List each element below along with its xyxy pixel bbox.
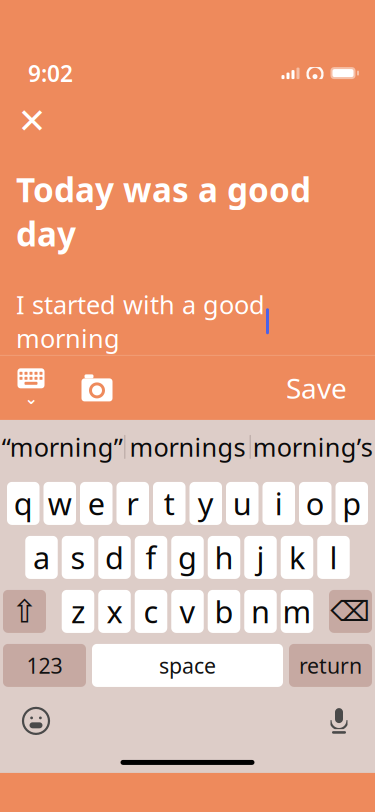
- button[interactable]: t: [153, 482, 185, 525]
- button[interactable]: Save: [278, 360, 355, 416]
- button[interactable]: space: [92, 644, 283, 687]
- staticText: h: [214, 537, 233, 578]
- staticText: m: [282, 591, 311, 632]
- staticText: p: [342, 483, 361, 524]
- button[interactable]: Add photo: [72, 360, 122, 416]
- staticText: 9:02: [28, 58, 73, 88]
- button[interactable]: r: [116, 482, 149, 525]
- staticText: r: [126, 483, 139, 524]
- staticText: d: [105, 537, 124, 578]
- staticText: k: [289, 537, 305, 578]
- staticText: ⌄: [24, 389, 37, 407]
- button[interactable]: z: [62, 590, 94, 633]
- staticText: n: [251, 591, 270, 632]
- button[interactable]: Hide keyboard: [6, 360, 56, 416]
- staticText: q: [14, 483, 33, 524]
- button[interactable]: Emoji: [12, 699, 60, 743]
- button[interactable]: y: [189, 482, 222, 525]
- staticText: I started with a good morning: [16, 288, 265, 355]
- button[interactable]: k: [281, 536, 313, 579]
- staticText: f: [145, 537, 156, 578]
- button[interactable]: b: [208, 590, 240, 633]
- staticText: ⌫: [330, 595, 370, 627]
- staticText: ✕: [17, 101, 46, 141]
- staticText: z: [71, 591, 85, 632]
- staticText: t: [164, 483, 175, 524]
- staticText: w: [48, 483, 72, 524]
- button[interactable]: d: [98, 536, 131, 579]
- staticText: e: [88, 483, 105, 524]
- button[interactable]: x: [98, 590, 131, 633]
- button[interactable]: u: [226, 482, 258, 525]
- staticText: 123: [26, 651, 62, 679]
- button[interactable]: morning’s: [251, 420, 375, 474]
- staticText: y: [198, 483, 214, 524]
- button[interactable]: h: [208, 536, 240, 579]
- staticText: g: [178, 537, 197, 578]
- button[interactable]: m: [281, 590, 313, 633]
- button[interactable]: s: [62, 536, 94, 579]
- staticText: u: [233, 483, 252, 524]
- staticText: l: [329, 537, 337, 578]
- button[interactable]: f: [135, 536, 167, 579]
- button[interactable]: Shift: [3, 590, 46, 633]
- button[interactable]: Close: [10, 99, 54, 143]
- button[interactable]: i: [262, 482, 295, 525]
- staticText: space: [159, 651, 216, 679]
- staticText: s: [70, 537, 85, 578]
- button[interactable]: q: [7, 482, 39, 525]
- button[interactable]: c: [135, 590, 167, 633]
- staticText: Save: [286, 369, 347, 406]
- button[interactable]: j: [244, 536, 277, 579]
- button[interactable]: g: [171, 536, 204, 579]
- button[interactable]: Delete: [329, 590, 372, 633]
- button[interactable]: a: [25, 536, 58, 579]
- button[interactable]: e: [80, 482, 112, 525]
- staticText: a: [33, 537, 50, 578]
- staticText: morning’s: [253, 430, 373, 464]
- staticText: j: [256, 537, 264, 578]
- button[interactable]: l: [317, 536, 350, 579]
- staticText: b: [214, 591, 233, 632]
- staticText: Today was a good day: [16, 167, 311, 256]
- button[interactable]: o: [299, 482, 331, 525]
- button[interactable]: p: [335, 482, 368, 525]
- staticText: c: [143, 591, 158, 632]
- staticText: v: [179, 591, 195, 632]
- button[interactable]: Dictation: [315, 699, 363, 743]
- button[interactable]: return: [289, 644, 372, 687]
- staticText: ⇧: [11, 593, 38, 629]
- staticText: x: [106, 591, 122, 632]
- staticText: o: [306, 483, 325, 524]
- staticText: i: [275, 483, 283, 524]
- button[interactable]: v: [171, 590, 204, 633]
- button[interactable]: 123: [3, 644, 86, 687]
- button[interactable]: n: [244, 590, 277, 633]
- staticText: mornings: [129, 430, 245, 464]
- button[interactable]: mornings: [125, 420, 250, 474]
- staticText: return: [299, 651, 362, 679]
- button[interactable]: “morning”: [0, 420, 124, 474]
- staticText: “morning”: [2, 430, 123, 464]
- button[interactable]: w: [43, 482, 76, 525]
